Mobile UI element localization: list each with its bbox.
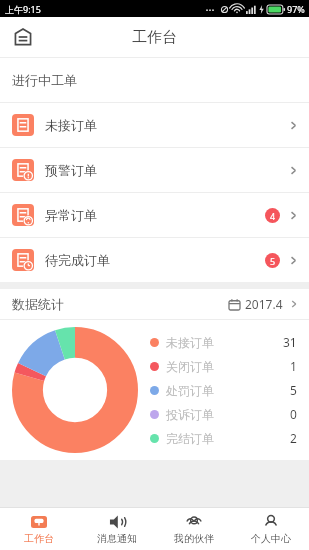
staticText: 投诉订单 [166,407,214,422]
button[interactable]: 异常订单 [0,193,309,237]
staticText: 2017.4 [245,296,283,312]
staticText: 未接订单 [45,117,97,133]
staticText: 31 [283,334,297,350]
staticText: 异常订单 [45,207,97,223]
button[interactable]: 工作台 [0,508,78,550]
staticText: 1 [290,358,297,374]
staticText: 5 [290,382,297,398]
staticText: 工作台 [132,28,177,47]
staticText: 上午9:15 [5,3,41,15]
button[interactable]: 预警订单 [0,148,309,192]
button[interactable]: 数据统计 [0,289,309,319]
staticText: 预警订单 [45,162,97,178]
staticText: 未接订单 [166,335,214,350]
staticText: 我的伙伴 [174,532,214,545]
button[interactable]: 待完成订单 [0,238,309,282]
staticText: 关闭订单 [166,359,214,374]
button[interactable]: 我的伙伴 [155,508,232,550]
staticText: 处罚订单 [166,383,214,398]
staticText: 4 [270,210,276,222]
button[interactable]: 未接订单 [0,103,309,147]
staticText: 2 [290,430,297,446]
staticText: 数据统计 [12,296,64,312]
button[interactable]: 消息通知 [78,508,155,550]
staticText: 待完成订单 [45,252,110,268]
staticText: 进行中工单 [12,72,77,88]
staticText: 5 [270,255,276,267]
staticText: 消息通知 [97,532,137,545]
staticText: 完结订单 [166,431,214,446]
staticText: 工作台 [24,532,54,545]
staticText: 0 [290,406,297,422]
staticText: 97% [287,3,305,15]
staticText: 个人中心 [251,532,291,545]
button[interactable]: Menu [6,20,40,54]
button[interactable]: 个人中心 [232,508,309,550]
